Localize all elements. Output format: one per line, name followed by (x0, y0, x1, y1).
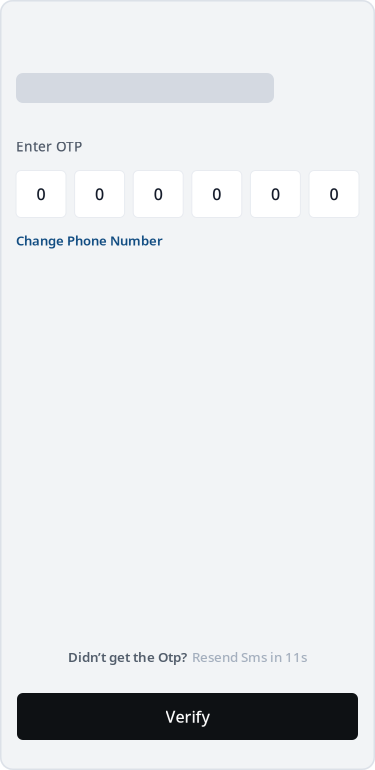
staticText: Change Phone Number (16, 231, 163, 249)
staticText: Verify (165, 706, 209, 727)
staticText: Resend Sms in 11s (192, 648, 307, 666)
button[interactable]: Resend Sms in 11s (192, 648, 307, 666)
button[interactable]: 0 (133, 170, 183, 217)
button[interactable]: 0 (309, 170, 359, 217)
button[interactable]: 0 (75, 170, 125, 217)
staticText: Enter OTP (16, 137, 82, 155)
staticText: 0 (329, 183, 338, 205)
button[interactable]: 0 (16, 170, 66, 217)
button[interactable]: Change Phone Number (0, 217, 179, 255)
staticText: 0 (271, 183, 280, 205)
staticText: 0 (212, 183, 221, 205)
button[interactable]: Verify (17, 693, 358, 740)
button[interactable]: 0 (250, 170, 300, 217)
staticText: 0 (95, 183, 104, 205)
staticText: 0 (36, 183, 45, 205)
button[interactable]: 0 (192, 170, 242, 217)
staticText: Didn’t get the Otp? (68, 648, 187, 666)
staticText: 0 (154, 183, 163, 205)
